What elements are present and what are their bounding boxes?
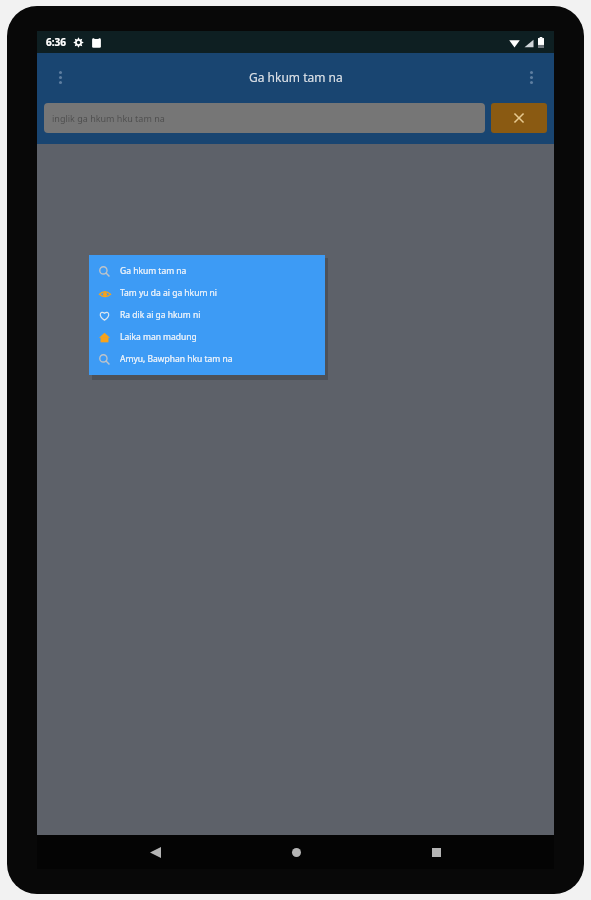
button[interactable]: Back xyxy=(133,835,177,869)
staticText: Ga hkum tam na xyxy=(120,265,187,277)
button[interactable]: Laika man madung xyxy=(89,326,325,348)
staticText: Ra dik ai ga hkum ni xyxy=(120,309,201,321)
button[interactable]: Ra dik ai ga hkum ni xyxy=(89,304,325,326)
staticText: inglik ga hkum hku tam na xyxy=(52,112,165,124)
button[interactable]: Ga hkum tam na xyxy=(89,260,325,282)
button[interactable]: Clear xyxy=(491,103,547,133)
button[interactable]: More options left xyxy=(43,60,77,94)
staticText: Tam yu da ai ga hkum ni xyxy=(120,287,218,299)
button[interactable]: Amyu, Bawphan hku tam na xyxy=(89,348,325,370)
staticText: Amyu, Bawphan hku tam na xyxy=(120,353,233,365)
staticText: Laika man madung xyxy=(120,331,197,343)
button[interactable]: inglik ga hkum hku tam na xyxy=(44,103,485,133)
staticText: Ga hkum tam na xyxy=(249,69,343,85)
button[interactable]: Tam yu da ai ga hkum ni xyxy=(89,282,325,304)
button[interactable]: Recents xyxy=(414,835,458,869)
button[interactable]: More options xyxy=(514,60,548,94)
button[interactable]: Home xyxy=(274,835,318,869)
staticText: 6:36 xyxy=(46,35,66,49)
